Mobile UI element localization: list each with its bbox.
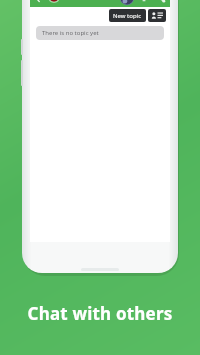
- staticText: New topic: [113, 12, 142, 20]
- button[interactable]: App logo: [47, 0, 61, 4]
- staticText: There is no topic yet: [42, 29, 99, 37]
- button[interactable]: Profile: [118, 0, 135, 6]
- button[interactable]: Share: [152, 0, 169, 6]
- button[interactable]: New topic: [109, 9, 146, 22]
- button[interactable]: Notifications: [135, 0, 152, 6]
- staticText: Chat with others: [0, 302, 200, 325]
- button[interactable]: There is no topic yet: [36, 26, 164, 40]
- button[interactable]: Members: [148, 9, 166, 22]
- button[interactable]: Back: [30, 0, 44, 4]
